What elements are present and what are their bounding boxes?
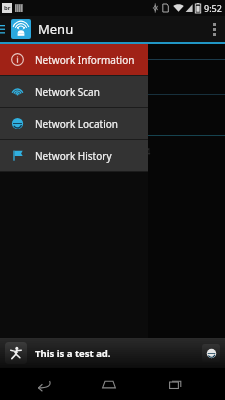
staticText: Menu (38, 20, 74, 38)
staticText: Network Scan (35, 85, 100, 99)
button[interactable]: Network Location (0, 108, 148, 139)
button[interactable]: More options (203, 16, 225, 42)
staticText: br (4, 4, 11, 12)
button[interactable]: Ad info (202, 344, 220, 362)
staticText: Network Information (35, 53, 135, 67)
button[interactable]: Open navigation drawer (0, 16, 8, 42)
staticText: 9:52 (204, 2, 222, 14)
button[interactable]: Network History (0, 140, 148, 171)
staticText: 51:54 (130, 146, 151, 157)
button[interactable]: Network Information (0, 44, 148, 75)
staticText: Network History (35, 149, 112, 163)
button[interactable]: Network Scan (0, 76, 148, 107)
button[interactable]: This is a test ad. (0, 338, 225, 368)
staticText: Network Location (35, 117, 118, 131)
staticText: This is a test ad. (35, 347, 111, 360)
button[interactable]: Recent apps (142, 368, 209, 400)
button[interactable]: Back (8, 368, 75, 400)
button[interactable]: Home (75, 368, 142, 400)
